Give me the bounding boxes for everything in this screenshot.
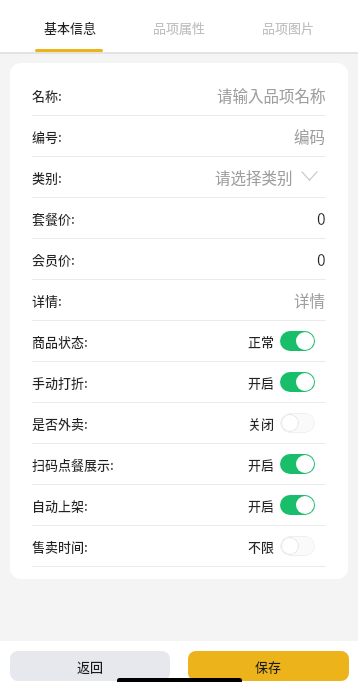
staticText: 编码 — [294, 125, 326, 147]
staticText: 开启 — [248, 496, 275, 515]
staticText: 编号: — [32, 127, 62, 146]
button[interactable]: 编号: — [32, 116, 326, 156]
staticText: 类别: — [32, 168, 62, 187]
staticText: 手动打折: — [32, 373, 88, 392]
staticText: 基本信息 — [44, 18, 97, 37]
staticText: 返回 — [77, 657, 104, 676]
staticText: 0 — [317, 207, 326, 229]
button[interactable]: Switch on — [280, 372, 315, 392]
button[interactable]: 手动打折: — [32, 362, 326, 402]
staticText: 正常 — [248, 332, 275, 351]
staticText: 不限 — [248, 537, 275, 556]
button[interactable]: 详情: — [32, 280, 326, 320]
button[interactable]: Switch on — [280, 331, 315, 351]
staticText: 详情: — [32, 291, 62, 310]
staticText: 会员价: — [32, 250, 75, 269]
button[interactable]: 返回 — [10, 651, 170, 681]
staticText: 详情 — [294, 289, 326, 311]
staticText: 开启 — [248, 455, 275, 474]
staticText: 请选择类别 — [215, 166, 293, 188]
staticText: 扫码点餐展示: — [32, 455, 114, 474]
staticText: 自动上架: — [32, 496, 88, 515]
button[interactable]: Switch on — [280, 454, 315, 474]
staticText: 商品状态: — [32, 332, 88, 351]
button[interactable]: 自动上架: — [32, 485, 326, 525]
button[interactable]: 会员价: — [32, 239, 326, 279]
button[interactable]: Switch off — [280, 536, 315, 556]
staticText: 是否外卖: — [32, 414, 88, 433]
button[interactable]: 售卖时间: — [32, 526, 326, 566]
staticText: 保存 — [255, 657, 282, 676]
staticText: 关闭 — [248, 414, 275, 433]
button[interactable]: 基本信息 — [15, 0, 125, 52]
staticText: 开启 — [248, 373, 275, 392]
button[interactable]: Switch on — [280, 495, 315, 515]
staticText: 套餐价: — [32, 209, 75, 228]
button[interactable]: 品项图片 — [234, 0, 343, 52]
button[interactable]: 扫码点餐展示: — [32, 444, 326, 484]
staticText: 名称: — [32, 86, 62, 105]
button[interactable]: 类别: — [32, 157, 326, 197]
button[interactable]: 品项属性 — [125, 0, 234, 52]
staticText: 售卖时间: — [32, 537, 88, 556]
button[interactable]: 商品状态: — [32, 321, 326, 361]
staticText: 品项图片 — [262, 18, 315, 37]
button[interactable]: 保存 — [188, 651, 349, 681]
button[interactable]: 套餐价: — [32, 198, 326, 238]
button[interactable]: Switch off — [280, 413, 315, 433]
button[interactable]: 名称: — [32, 75, 326, 115]
button[interactable]: 是否外卖: — [32, 403, 326, 443]
staticText: 品项属性 — [153, 18, 206, 37]
staticText: 0 — [317, 248, 326, 270]
staticText: 请输入品项名称 — [217, 84, 326, 106]
